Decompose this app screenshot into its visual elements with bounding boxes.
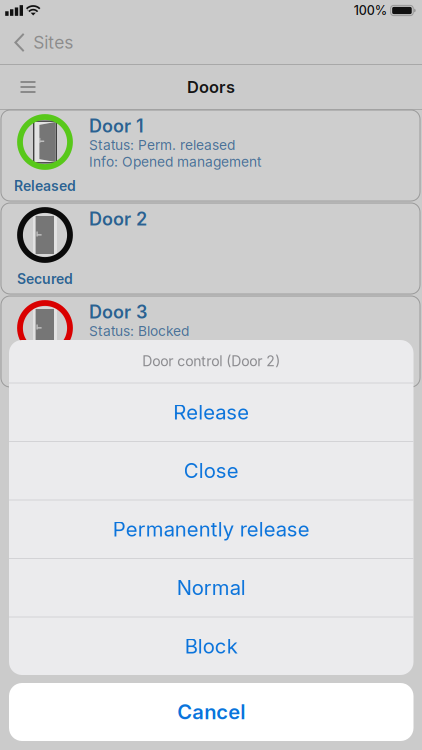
staticText: Secured xyxy=(17,270,73,287)
staticText: Permanently release xyxy=(113,517,310,541)
button[interactable]: Blocked xyxy=(1,296,420,387)
staticText: Released xyxy=(14,177,76,194)
button[interactable]: Release xyxy=(9,383,413,441)
button[interactable]: Normal xyxy=(9,559,413,616)
button[interactable]: Secured xyxy=(1,203,420,294)
button[interactable]: Close xyxy=(9,442,413,499)
staticText: Release xyxy=(173,400,249,424)
staticText: 100% xyxy=(354,3,387,18)
staticText: Info: Opened management xyxy=(89,153,261,170)
staticText: Door 1 xyxy=(89,115,144,137)
staticText: Sites xyxy=(33,32,73,53)
button[interactable]: Block xyxy=(9,617,413,675)
button[interactable]: Released xyxy=(1,110,420,201)
button[interactable]: Permanently release xyxy=(9,500,413,558)
button[interactable]: Sites xyxy=(0,21,83,64)
staticText: Normal xyxy=(177,575,246,600)
staticText: Cancel xyxy=(177,700,245,724)
button[interactable]: Menu xyxy=(0,65,56,109)
staticText: Door control (Door 2) xyxy=(142,353,280,370)
staticText: Door 2 xyxy=(89,208,147,230)
staticText: Status: Blocked xyxy=(89,323,189,339)
staticText: Door 3 xyxy=(89,301,147,323)
staticText: Block xyxy=(185,634,238,658)
staticText: Status: Perm. released xyxy=(89,137,235,153)
staticText: Doors xyxy=(187,77,235,97)
button[interactable]: Cancel xyxy=(9,683,413,741)
staticText: Close xyxy=(184,458,239,483)
